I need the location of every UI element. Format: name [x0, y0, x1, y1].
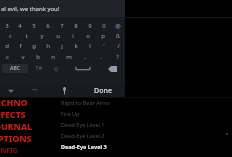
button[interactable]: Emoji: [48, 64, 64, 73]
button[interactable]: TECHNO: [0, 96, 28, 108]
staticText: @: [115, 22, 121, 30]
button[interactable]: OPTIONS: [0, 132, 32, 144]
staticText: ß: [116, 32, 120, 40]
button[interactable]: al evil, we thank you!: [0, 0, 125, 17]
staticText: ?!#: [35, 65, 42, 72]
button[interactable]: Voice input: [53, 84, 75, 97]
button[interactable]: d: [0, 41, 13, 51]
button[interactable]: 4: [13, 21, 27, 31]
button[interactable]: ABC: [2, 64, 28, 73]
button[interactable]: ': [97, 41, 111, 51]
staticText: v: [21, 53, 25, 61]
button[interactable]: g: [27, 41, 41, 51]
button[interactable]: 9: [83, 21, 97, 31]
staticText: 6: [46, 22, 50, 30]
button[interactable]: 0: [97, 21, 111, 31]
button[interactable]: r: [2, 31, 18, 41]
staticText: y: [40, 32, 44, 40]
button[interactable]: ?!#: [28, 64, 48, 73]
button[interactable]: y: [34, 31, 50, 41]
button[interactable]: Dead-Eye Level 3: [61, 143, 141, 150]
button[interactable]: Fire Up: [61, 110, 141, 117]
staticText: 9: [88, 22, 92, 30]
staticText: u: [56, 32, 60, 40]
staticText: 3: [5, 22, 9, 30]
staticText: o: [86, 32, 90, 40]
button[interactable]: @: [111, 21, 125, 31]
staticText: ?: [116, 53, 119, 61]
staticText: f: [19, 42, 22, 50]
button[interactable]: CONFIG: [0, 146, 18, 156]
staticText: k: [74, 42, 78, 50]
button[interactable]: c: [0, 51, 15, 62]
button[interactable]: Backspace: [101, 64, 123, 73]
staticText: j: [61, 42, 63, 50]
button[interactable]: 5: [27, 21, 41, 31]
button[interactable]: Recents: [22, 84, 48, 97]
staticText: •••: [32, 87, 38, 94]
staticText: 4: [18, 22, 22, 30]
button[interactable]: Space: [64, 64, 101, 73]
button[interactable]: 3: [0, 21, 13, 31]
button[interactable]: f: [13, 41, 27, 51]
staticText: Done: [94, 86, 112, 96]
button[interactable]: EFFECTS: [0, 108, 26, 120]
staticText: al evil, we thank you!: [1, 5, 60, 13]
button[interactable]: k: [69, 41, 83, 51]
staticText: l: [89, 42, 91, 50]
staticText: t: [25, 32, 28, 40]
staticText: h: [46, 42, 50, 50]
staticText: ,: [84, 53, 86, 61]
button[interactable]: t: [18, 31, 34, 41]
button[interactable]: Dead-Eye Level 2: [61, 132, 141, 139]
button[interactable]: m: [61, 51, 77, 62]
staticText: d: [5, 42, 9, 50]
button[interactable]: /: [111, 41, 125, 51]
button[interactable]: j: [55, 41, 69, 51]
button[interactable]: u: [50, 31, 65, 41]
button[interactable]: v: [15, 51, 30, 62]
button[interactable]: .: [93, 51, 109, 62]
button[interactable]: h: [41, 41, 55, 51]
staticText: 5: [32, 22, 36, 30]
button[interactable]: Done: [81, 84, 125, 97]
button[interactable]: Right to Bear Arms: [61, 99, 141, 106]
staticText: 0: [102, 22, 106, 30]
staticText: p: [101, 32, 105, 40]
button[interactable]: ,: [77, 51, 93, 62]
button[interactable]: b: [30, 51, 45, 62]
staticText: ABC: [10, 65, 20, 72]
staticText: i: [72, 32, 74, 40]
staticText: n: [51, 53, 55, 61]
staticText: b: [36, 53, 40, 61]
staticText: ☺: [53, 66, 59, 72]
button[interactable]: 6: [41, 21, 55, 31]
button[interactable]: i: [65, 31, 80, 41]
staticText: g: [32, 42, 36, 50]
staticText: c: [6, 53, 9, 61]
button[interactable]: ?: [109, 51, 125, 62]
button[interactable]: ß: [110, 31, 125, 41]
button[interactable]: n: [45, 51, 61, 62]
button[interactable]: p: [95, 31, 110, 41]
button[interactable]: 7: [55, 21, 69, 31]
button[interactable]: JOURNAL: [0, 120, 33, 132]
staticText: r: [9, 32, 12, 40]
button[interactable]: l: [83, 41, 97, 51]
staticText: m: [66, 53, 72, 61]
staticText: /: [117, 42, 120, 50]
staticText: ': [103, 42, 105, 50]
button[interactable]: o: [80, 31, 95, 41]
staticText: .: [100, 53, 102, 61]
button[interactable]: 8: [69, 21, 83, 31]
staticText: 8: [74, 22, 78, 30]
button[interactable]: Dead-Eye Level 1: [61, 121, 141, 128]
button[interactable]: Hide keyboard: [0, 84, 22, 97]
staticText: 7: [60, 22, 64, 30]
